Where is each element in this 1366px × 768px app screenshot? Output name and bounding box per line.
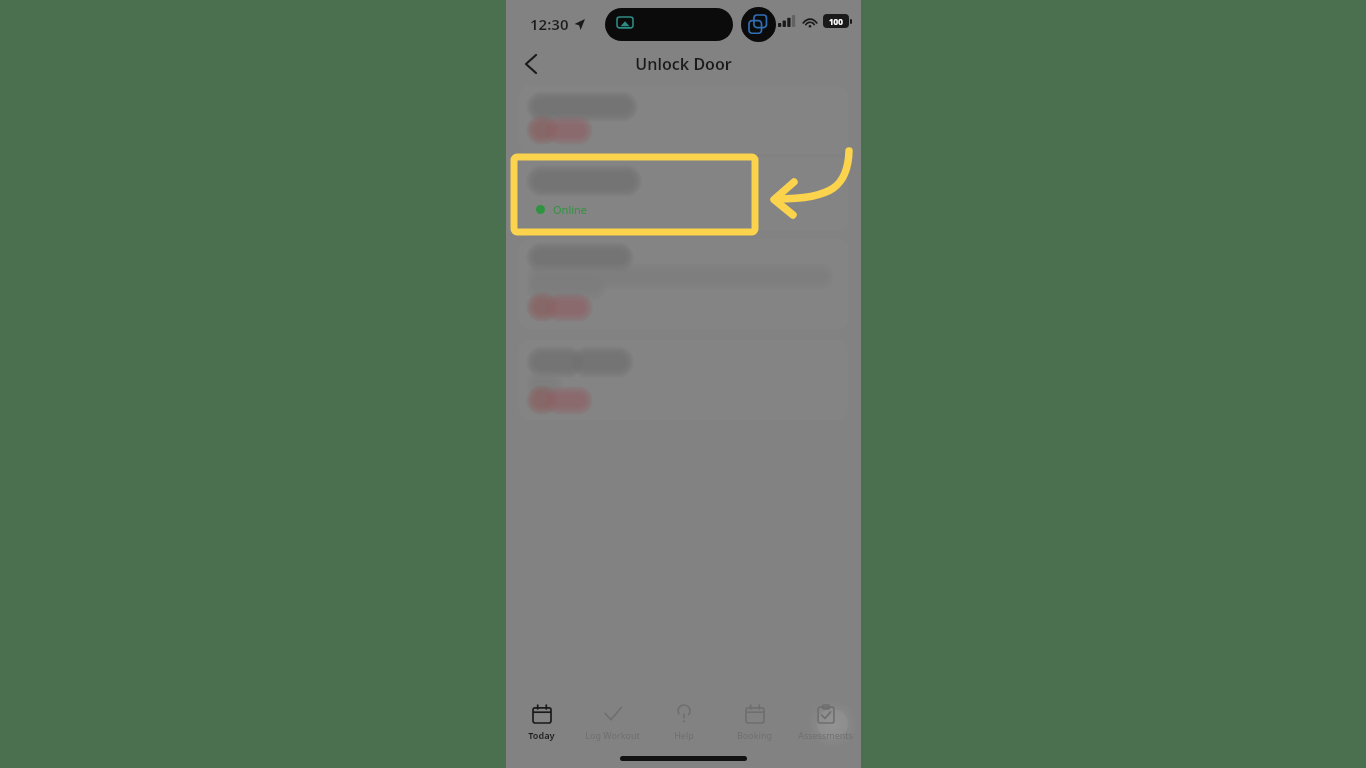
button[interactable]: Back: [512, 46, 550, 82]
button[interactable]: Log Workout: [577, 696, 648, 746]
staticText: Help: [674, 729, 694, 741]
button[interactable]: [519, 86, 848, 154]
staticText: Log Workout: [585, 729, 640, 741]
staticText: Online: [553, 202, 588, 217]
staticText: 100: [829, 16, 843, 27]
button[interactable]: [519, 340, 848, 420]
button[interactable]: Assessments: [790, 696, 861, 746]
staticText: Booking: [737, 729, 772, 741]
button[interactable]: Today: [506, 696, 577, 746]
staticText: 12:30: [530, 14, 569, 34]
button[interactable]: Online: [519, 157, 848, 231]
button[interactable]: Booking: [719, 696, 790, 746]
staticText: Assessments: [798, 729, 853, 741]
button[interactable]: [519, 239, 848, 329]
staticText: Today: [528, 729, 555, 741]
staticText: Unlock Door: [635, 53, 732, 75]
